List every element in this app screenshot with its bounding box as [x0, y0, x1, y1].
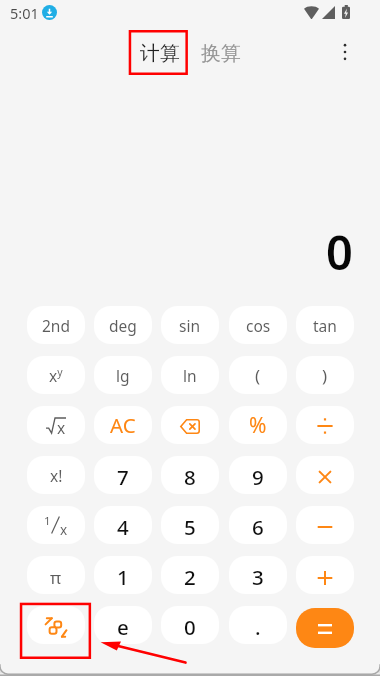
button[interactable]: 1 [27, 506, 85, 544]
button[interactable]: sin [161, 306, 219, 344]
button[interactable]: 1 [94, 556, 152, 594]
button[interactable]: ( [229, 356, 287, 394]
button[interactable]: Multiply [296, 456, 354, 494]
staticText: 5:01 [10, 3, 39, 23]
button[interactable]: ) [296, 356, 354, 394]
staticText: ln [183, 365, 197, 386]
button[interactable]: 4 [94, 506, 152, 544]
staticText: ) [322, 364, 328, 387]
button[interactable]: Divide [296, 406, 354, 444]
staticText: 6 [252, 513, 264, 541]
button[interactable]: e [94, 606, 152, 644]
button[interactable]: % [229, 406, 287, 444]
staticText: 计算 [140, 41, 180, 66]
staticText: sin [179, 315, 201, 336]
button[interactable]: x! [27, 456, 85, 494]
staticText: 0 [326, 220, 353, 284]
staticText: tan [313, 315, 337, 336]
button[interactable]: π [27, 556, 85, 594]
staticText: 5 [184, 513, 196, 541]
button[interactable]: Delete [161, 406, 219, 444]
button[interactable]: tan [296, 306, 354, 344]
button[interactable]: 6 [229, 506, 287, 544]
staticText: deg [109, 315, 137, 336]
button[interactable]: cos [229, 306, 287, 344]
button[interactable]: . [229, 606, 287, 644]
button[interactable]: 8 [161, 456, 219, 494]
button[interactable]: 3 [229, 556, 287, 594]
staticText: x [60, 521, 68, 539]
button[interactable]: deg [94, 306, 152, 344]
staticText: . [255, 613, 261, 641]
staticText: 4 [117, 513, 129, 541]
button[interactable]: 5 [161, 506, 219, 544]
button[interactable]: AC [94, 406, 152, 444]
staticText: x! [50, 465, 63, 486]
button[interactable]: 2 [161, 556, 219, 594]
staticText: e [117, 613, 129, 641]
staticText: 3 [252, 563, 264, 591]
button[interactable]: xy [27, 356, 85, 394]
staticText: 1 [117, 563, 129, 591]
staticText: 7 [117, 463, 129, 491]
staticText: 1 [44, 513, 51, 529]
staticText: ( [255, 364, 261, 387]
button[interactable]: lg [94, 356, 152, 394]
button[interactable]: Minus [296, 506, 354, 544]
staticText: 2 [184, 563, 196, 591]
button[interactable]: 0 [161, 606, 219, 644]
button[interactable]: x [27, 406, 85, 444]
button[interactable]: 2nd [27, 306, 85, 344]
button[interactable]: Equals [296, 608, 354, 648]
staticText: cos [246, 315, 271, 336]
button[interactable]: 9 [229, 456, 287, 494]
staticText: % [249, 411, 267, 440]
button[interactable]: ln [161, 356, 219, 394]
staticText: 换算 [201, 41, 241, 66]
button[interactable]: 7 [94, 456, 152, 494]
button[interactable]: Unit conversion [27, 606, 85, 644]
button[interactable]: Plus [296, 556, 354, 594]
staticText: 9 [252, 463, 264, 491]
staticText: 8 [184, 463, 196, 491]
staticText: 0 [184, 613, 196, 641]
staticText: AC [110, 411, 136, 439]
button[interactable]: More options [329, 36, 361, 68]
button[interactable]: 计算 [132, 33, 188, 74]
staticText: π [50, 566, 62, 589]
button[interactable]: 换算 [193, 33, 249, 74]
staticText: xy [49, 365, 63, 386]
staticText: lg [116, 365, 130, 386]
staticText: x [57, 417, 66, 438]
staticText: 2nd [42, 315, 70, 336]
